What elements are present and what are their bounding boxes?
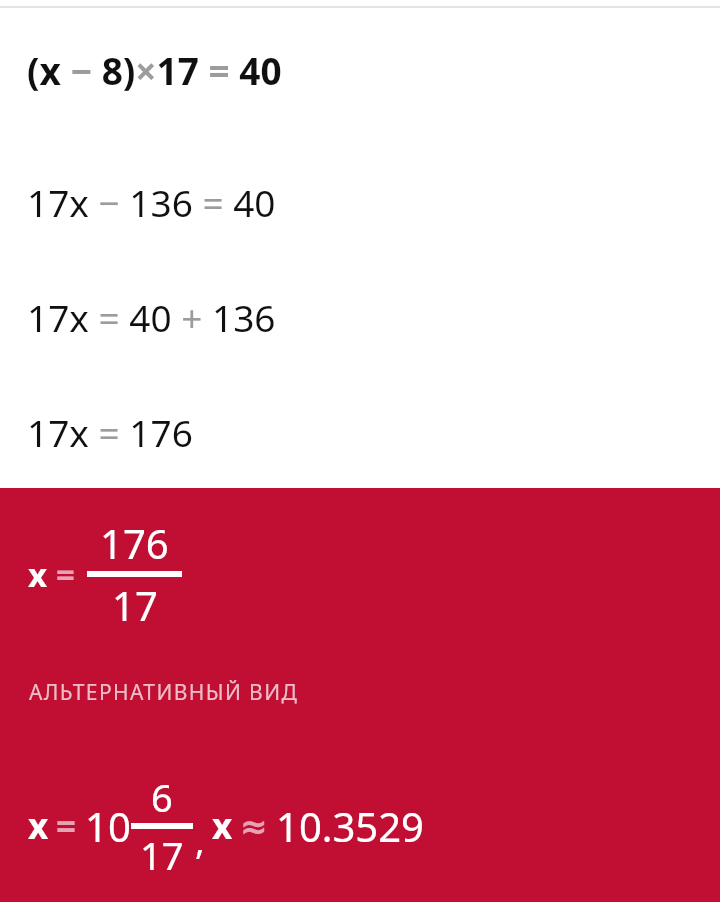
staticText: = [56, 552, 75, 597]
staticText: 17x = 40 + 136 [27, 292, 276, 342]
staticText: 17 [140, 829, 184, 881]
staticText: 6 [151, 771, 173, 823]
staticText: 17x = 176 [27, 407, 193, 457]
staticText: , [195, 816, 205, 865]
staticText: x [28, 552, 48, 597]
staticText: (x − 8)×17 = 40 [27, 45, 282, 95]
staticText: ≈ [240, 807, 268, 845]
staticText: 17x − 136 = 40 [27, 177, 276, 227]
staticText: АЛЬТЕРНАТИВНЫЙ ВИД [29, 678, 299, 707]
staticText: x [212, 802, 233, 850]
button[interactable]: x [0, 488, 720, 902]
staticText: x [28, 802, 49, 850]
staticText: 10.3529 [276, 799, 424, 853]
staticText: 176 [100, 516, 169, 570]
staticText: 17 [112, 578, 158, 632]
staticText: = [56, 802, 77, 850]
staticText: 10 [85, 799, 131, 853]
